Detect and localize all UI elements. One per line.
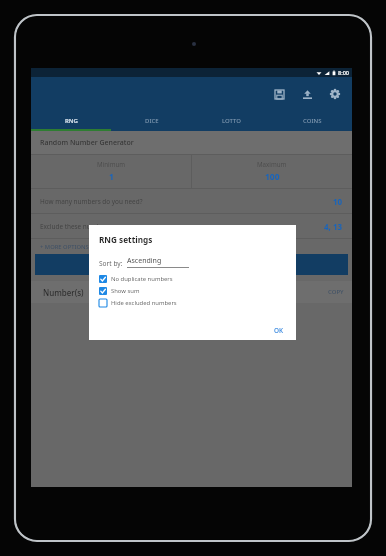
staticText: Minimum — [97, 160, 126, 168]
staticText: DICE — [145, 117, 159, 125]
button[interactable]: Exclude these numbers — [31, 214, 352, 238]
button[interactable]: Minimum — [31, 155, 191, 188]
staticText: Random Number Generator — [40, 138, 134, 148]
button[interactable]: RNG — [31, 111, 112, 131]
staticText: 1 — [109, 171, 114, 183]
button[interactable] — [35, 254, 348, 275]
staticText: LOTTO — [222, 117, 242, 125]
button[interactable]: DICE — [112, 111, 192, 131]
staticText: RNG — [65, 117, 78, 125]
button[interactable]: COINS — [272, 111, 352, 131]
staticText: How many numbers do you need? — [40, 197, 143, 206]
staticText: Maximum — [257, 160, 287, 168]
staticText: Number(s) — [43, 287, 84, 298]
staticText: Hide excluded numbers — [111, 299, 177, 307]
button[interactable]: Load — [299, 86, 315, 102]
button[interactable]: Hide excluded numbers — [89, 297, 296, 309]
button[interactable]: Show sum — [89, 285, 296, 297]
button[interactable]: LOTTO — [192, 111, 272, 131]
button[interactable]: No duplicate numbers — [89, 273, 296, 285]
staticText: Ascending — [127, 256, 162, 266]
staticText: COPY — [328, 288, 344, 296]
staticText: OK — [274, 326, 284, 335]
staticText: 100 — [265, 171, 280, 183]
button[interactable]: Save — [271, 86, 287, 102]
button[interactable]: Settings — [327, 86, 343, 102]
staticText: RNG settings — [99, 234, 153, 245]
staticText: Exclude these numbers — [40, 222, 110, 231]
staticText: COINS — [303, 117, 322, 125]
staticText: 10 — [333, 196, 343, 207]
button[interactable]: COPY — [320, 284, 352, 300]
button[interactable]: OK — [262, 321, 296, 340]
staticText: + MORE OPTIONS — [40, 243, 89, 251]
staticText: 4, 13 — [324, 221, 343, 232]
button[interactable]: Maximum — [192, 155, 352, 188]
button[interactable]: How many numbers do you need? — [31, 189, 352, 213]
staticText: Show sum — [111, 287, 140, 295]
staticText: No duplicate numbers — [111, 275, 173, 283]
staticText: Sort by: — [99, 259, 123, 268]
button[interactable]: Sort by: — [99, 256, 189, 268]
button[interactable]: + MORE OPTIONS — [31, 239, 352, 254]
staticText: 8:00 — [338, 69, 349, 76]
